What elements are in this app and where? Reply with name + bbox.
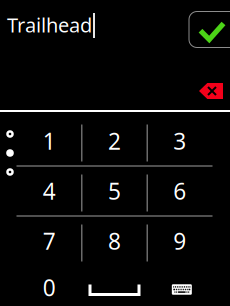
staticText: 1	[43, 126, 56, 156]
staticText: 5	[108, 176, 121, 206]
button[interactable]: 1	[16, 116, 82, 166]
staticText: 3	[173, 126, 186, 156]
staticText: Trailhead	[7, 11, 92, 38]
button[interactable]: 8	[82, 216, 147, 266]
staticText: 9	[173, 226, 186, 256]
staticText: 4	[43, 176, 56, 206]
button[interactable]: Space	[82, 269, 147, 306]
button[interactable]: 9	[147, 216, 212, 266]
button[interactable]: 7	[16, 216, 82, 266]
button[interactable]: 2	[82, 116, 147, 166]
button[interactable]: 0	[16, 267, 82, 306]
button[interactable]: Done	[189, 11, 230, 47]
button[interactable]: Delete	[199, 83, 223, 99]
staticText: 7	[43, 226, 56, 256]
button[interactable]: 5	[82, 166, 147, 216]
button[interactable]: Keyboard	[149, 269, 214, 306]
button[interactable]: 6	[147, 166, 212, 216]
staticText: 0	[43, 272, 56, 302]
staticText: 8	[108, 226, 121, 256]
staticText: 2	[108, 126, 121, 156]
button[interactable]: 3	[147, 116, 212, 166]
button[interactable]: 4	[16, 166, 82, 216]
staticText: 6	[173, 176, 186, 206]
